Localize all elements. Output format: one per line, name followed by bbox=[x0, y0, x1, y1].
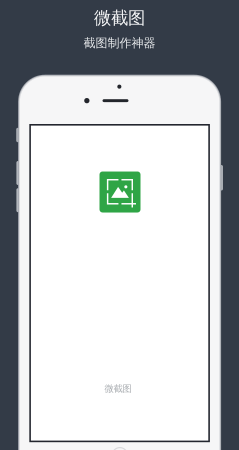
staticText: 微截图 bbox=[94, 7, 145, 29]
staticText: 截图制作神器 bbox=[83, 36, 155, 50]
button[interactable]: 微截图 app icon bbox=[99, 171, 140, 212]
staticText: 微截图 bbox=[104, 383, 131, 394]
